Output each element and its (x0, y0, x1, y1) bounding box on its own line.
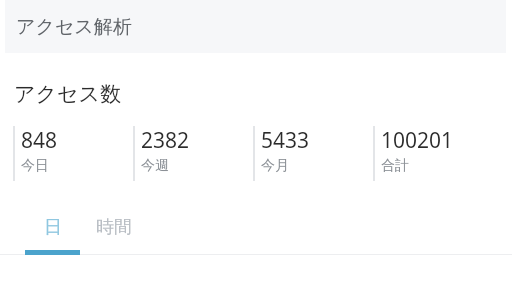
staticText: 今日 (21, 157, 49, 175)
staticText: 今週 (141, 157, 169, 175)
staticText: 日 (44, 216, 62, 239)
button[interactable]: 100201 (373, 126, 493, 182)
staticText: アクセス解析 (16, 15, 132, 39)
staticText: 今月 (261, 157, 289, 175)
button[interactable]: 2382 (133, 126, 253, 182)
staticText: 2382 (141, 126, 190, 155)
staticText: 合計 (381, 157, 409, 175)
button[interactable]: 時間 (80, 212, 148, 242)
staticText: アクセス数 (14, 81, 121, 107)
staticText: 時間 (96, 216, 132, 239)
staticText: 848 (21, 126, 58, 155)
staticText: 5433 (261, 126, 310, 155)
button[interactable]: アクセス解析 (5, 0, 506, 53)
button[interactable]: 日 (25, 212, 80, 242)
staticText: 100201 (381, 126, 454, 155)
button[interactable]: 848 (13, 126, 133, 182)
button[interactable]: 5433 (253, 126, 373, 182)
